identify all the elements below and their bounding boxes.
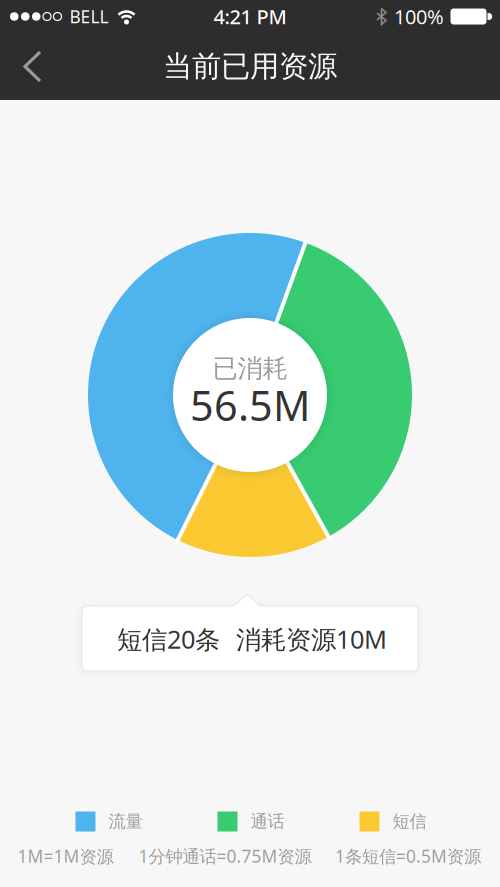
staticText: 1分钟通话=0.75M资源 xyxy=(138,844,311,867)
staticText: 已消耗 xyxy=(212,353,287,384)
staticText: 当前已用资源 xyxy=(163,48,337,84)
staticText: 1M=1M资源 xyxy=(17,844,113,867)
staticText: 通话 xyxy=(250,811,284,832)
staticText: 4:21 PM xyxy=(213,3,286,30)
button[interactable]: Back xyxy=(0,33,52,100)
staticText: 短信 xyxy=(392,811,426,832)
staticText: 100% xyxy=(394,3,444,30)
staticText: 1条短信=0.5M资源 xyxy=(335,844,481,867)
staticText: 56.5M xyxy=(190,378,310,432)
staticText: 短信20条 消耗资源10M xyxy=(117,622,387,656)
staticText: 流量 xyxy=(108,811,142,832)
staticText: BELL xyxy=(69,5,108,28)
